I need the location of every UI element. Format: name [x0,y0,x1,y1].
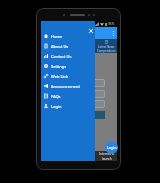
staticText: Login [107,145,117,150]
button[interactable]: Web Link [41,71,95,81]
staticText: Contact Us [51,54,72,59]
button[interactable] [44,111,105,119]
button[interactable]: Internet is [95,151,117,161]
button[interactable]: Home [41,31,95,41]
staticText: About Us [51,44,69,49]
staticText: Announcement [51,84,80,89]
button[interactable]: Announcement [41,81,95,91]
button[interactable] [44,90,105,98]
staticText: launch [102,157,112,161]
staticText: FAQs [51,94,61,99]
staticText: Latest News [98,45,115,49]
button[interactable]: Login [41,101,95,111]
button[interactable]: About Us [41,41,95,51]
staticText: Internet is [99,152,114,156]
staticText: Compendium [97,49,116,53]
staticText: Login [51,104,62,109]
staticText: Web Link [51,74,69,79]
button[interactable]: Settings [41,61,95,71]
staticText: Home [51,34,63,39]
button[interactable]: Contact Us [41,51,95,61]
staticText: Settings [51,64,67,69]
button[interactable]: More options [110,27,117,39]
button[interactable] [44,79,105,87]
button[interactable]: Login [105,141,118,154]
staticText: 96% [108,22,115,26]
button[interactable]: Close drawer [86,26,95,35]
button[interactable] [44,100,105,108]
button[interactable]: FAQs [41,91,95,101]
